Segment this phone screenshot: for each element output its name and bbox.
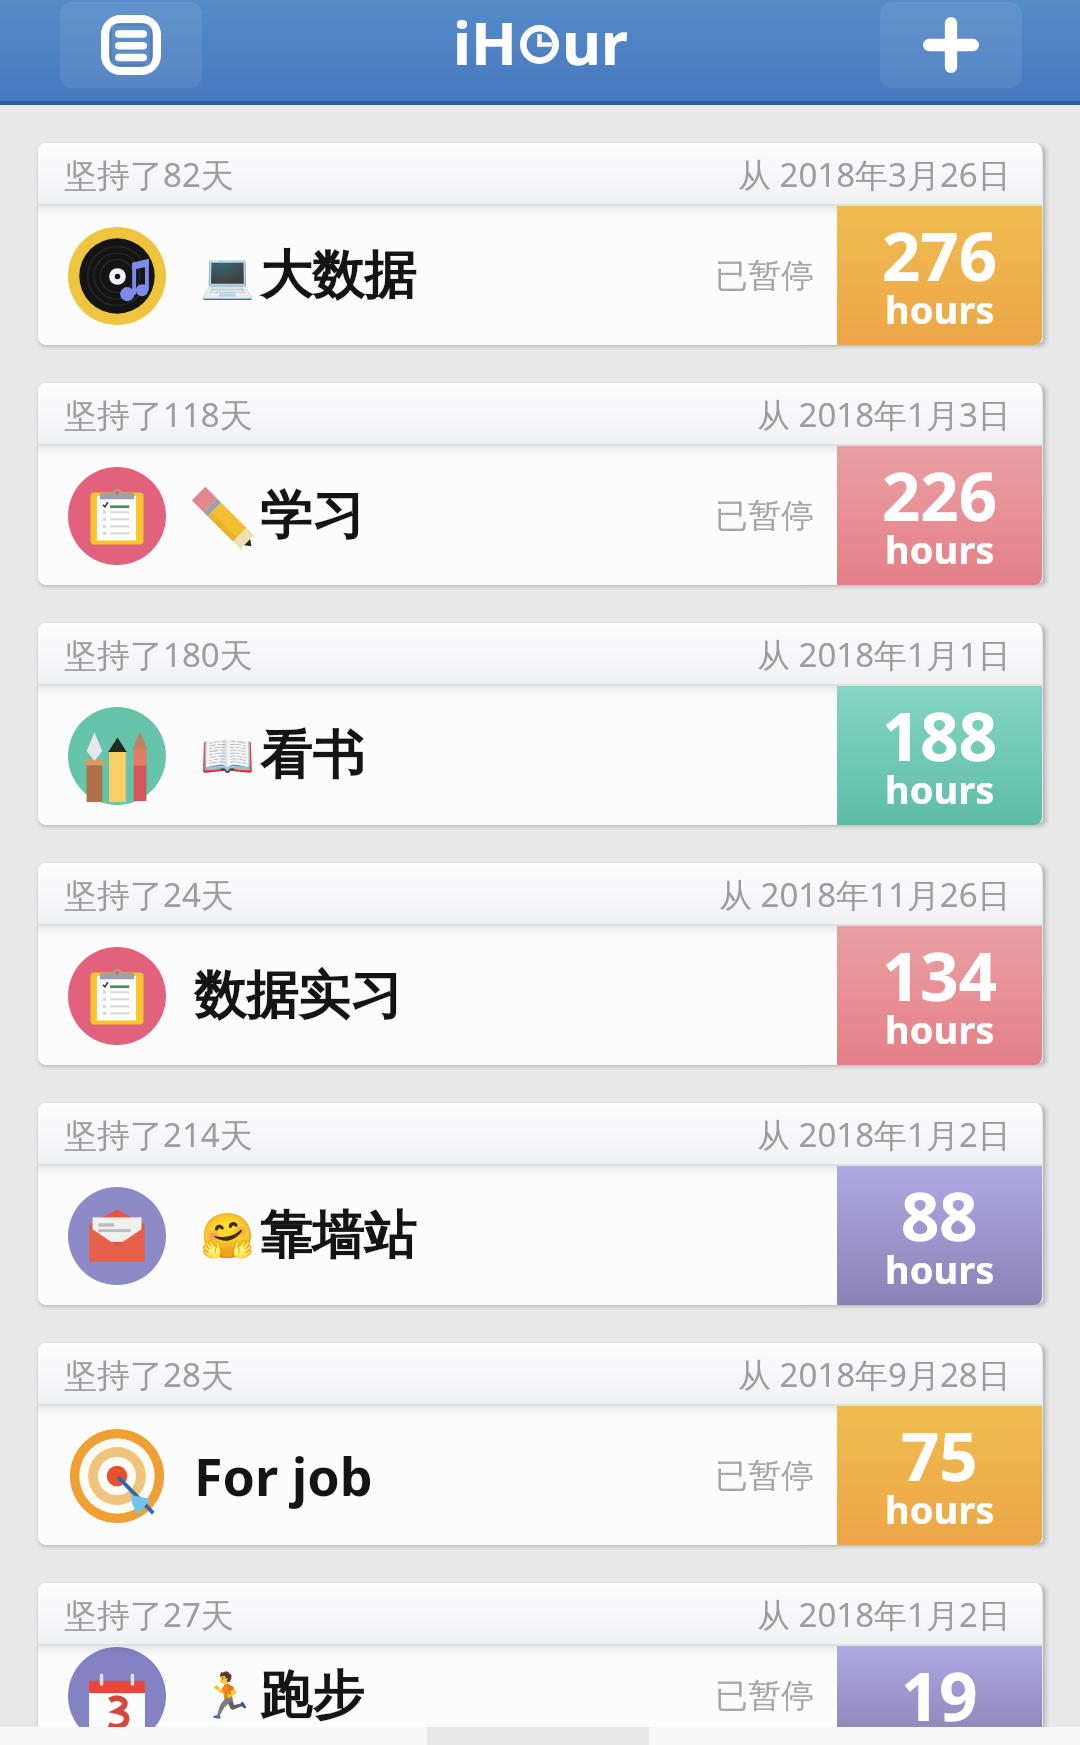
staticText: 数据实习 xyxy=(194,963,402,1029)
staticText: 坚持了118天 xyxy=(64,392,253,437)
staticText: 已暂停 xyxy=(715,1675,814,1717)
button[interactable]: 坚持了214天 xyxy=(38,1103,1042,1305)
staticText: hours xyxy=(885,763,995,815)
staticText: 💻 xyxy=(200,250,255,302)
staticText: 坚持了214天 xyxy=(64,1112,253,1157)
button[interactable]: 坚持了27天 xyxy=(38,1583,1042,1745)
staticText: hours xyxy=(885,1723,995,1745)
staticText: 学习 xyxy=(260,483,364,549)
button[interactable]: Menu xyxy=(60,2,202,88)
staticText: 靠墙站 xyxy=(260,1203,416,1269)
staticText: 从 2018年3月26日 xyxy=(738,152,1011,197)
staticText: 从 2018年9月28日 xyxy=(738,1352,1011,1397)
button[interactable]: 坚持了180天 xyxy=(38,623,1042,825)
button[interactable]: 坚持了24天 xyxy=(38,863,1042,1065)
staticText: 已暂停 xyxy=(715,1455,814,1497)
staticText: 🏃 xyxy=(200,1670,255,1722)
staticText: For job xyxy=(194,1440,373,1511)
staticText: 88 xyxy=(901,1169,978,1260)
staticText: hours xyxy=(885,283,995,335)
staticText: 276 xyxy=(882,209,997,300)
staticText: 从 2018年1月2日 xyxy=(757,1112,1011,1157)
staticText: 从 2018年1月3日 xyxy=(757,392,1011,437)
button[interactable]: 坚持了118天 xyxy=(38,383,1042,585)
staticText: 坚持了82天 xyxy=(64,152,234,197)
staticText: iH xyxy=(453,1,517,83)
staticText: 坚持了27天 xyxy=(64,1592,234,1637)
staticText: 坚持了180天 xyxy=(64,632,253,677)
staticText: 🤗 xyxy=(200,1210,255,1262)
staticText: hours xyxy=(885,1003,995,1055)
staticText: 19 xyxy=(901,1649,978,1740)
staticText: 从 2018年1月1日 xyxy=(757,632,1011,677)
staticText: 已暂停 xyxy=(715,495,814,537)
staticText: hours xyxy=(885,1243,995,1295)
staticText: 226 xyxy=(882,449,997,540)
staticText: 已暂停 xyxy=(715,255,814,297)
staticText: 坚持了24天 xyxy=(64,872,234,917)
staticText: 看书 xyxy=(260,723,364,789)
button[interactable]: 坚持了82天 xyxy=(38,143,1042,345)
button[interactable]: Add xyxy=(880,2,1022,88)
staticText: 📖 xyxy=(200,730,255,782)
staticText: 从 2018年1月2日 xyxy=(757,1592,1011,1637)
staticText: hours xyxy=(885,523,995,575)
staticText: 坚持了28天 xyxy=(64,1352,234,1397)
staticText: 75 xyxy=(901,1409,978,1500)
staticText: 从 2018年11月26日 xyxy=(719,872,1011,917)
button[interactable]: 坚持了28天 xyxy=(38,1343,1042,1545)
staticText: ur xyxy=(562,1,628,83)
staticText: 跑步 xyxy=(260,1663,364,1729)
staticText: 134 xyxy=(882,929,997,1020)
staticText: 188 xyxy=(882,689,997,780)
staticText: 大数据 xyxy=(260,243,416,309)
staticText: hours xyxy=(885,1483,995,1535)
